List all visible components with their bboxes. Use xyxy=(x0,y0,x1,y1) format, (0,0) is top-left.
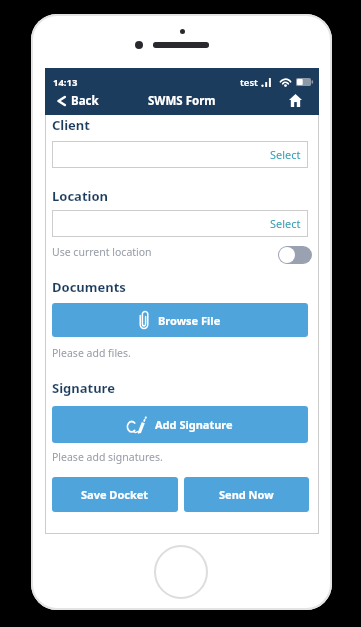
staticText: Add Signature xyxy=(155,417,233,432)
staticText: Send Now xyxy=(219,487,274,502)
staticText: Back xyxy=(71,93,99,109)
button[interactable]: Send Now xyxy=(184,477,309,512)
staticText: Browse File xyxy=(158,313,221,328)
staticText: Save Docket xyxy=(81,487,149,502)
staticText: SWMS Form xyxy=(148,93,216,109)
staticText: Location xyxy=(52,187,108,205)
staticText: Select xyxy=(270,147,301,162)
staticText: test xyxy=(240,76,258,89)
button[interactable] xyxy=(154,545,208,599)
staticText: Signature xyxy=(52,379,115,397)
button[interactable] xyxy=(278,246,312,264)
staticText: Use current location xyxy=(52,245,152,259)
button[interactable]: Save Docket xyxy=(52,477,178,512)
staticText: Client xyxy=(52,116,90,134)
button[interactable]: Select xyxy=(52,210,308,237)
button[interactable]: Browse File xyxy=(52,303,308,337)
staticText: Please add files. xyxy=(52,346,131,360)
button[interactable] xyxy=(289,94,302,107)
staticText: Please add signatures. xyxy=(52,450,163,464)
button[interactable]: Select xyxy=(52,141,308,168)
button[interactable]: Back xyxy=(57,93,99,109)
button[interactable]: Add Signature xyxy=(52,406,308,443)
staticText: Select xyxy=(270,216,301,231)
staticText: 14:13 xyxy=(53,76,78,89)
staticText: Documents xyxy=(52,278,126,296)
